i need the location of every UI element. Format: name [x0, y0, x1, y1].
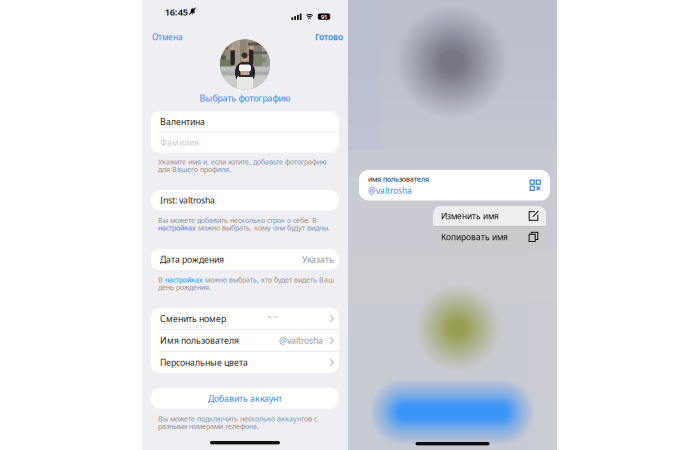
- staticText: Имя пользователя: [160, 335, 239, 346]
- button[interactable]: Дата рождения: [151, 249, 339, 270]
- staticText: @valtrosha: [279, 335, 323, 346]
- staticText: @valtrosha: [368, 185, 412, 196]
- button[interactable]: Копировать имя: [433, 227, 546, 247]
- staticText: Указать: [302, 254, 334, 265]
- staticText: имя пользователя: [368, 174, 429, 184]
- button[interactable]: Готово: [278, 30, 348, 44]
- button[interactable]: Добавить аккаунт: [151, 388, 339, 409]
- button[interactable]: Персональные цвета: [151, 352, 339, 373]
- staticText: Изменить имя: [441, 210, 499, 222]
- staticText: Дата рождения: [160, 254, 224, 265]
- staticText: Фамилия: [160, 137, 199, 148]
- staticText: Отмена: [152, 31, 183, 43]
- button[interactable]: Имя пользователя: [151, 330, 339, 351]
- staticText: 91: [321, 13, 327, 20]
- staticText: Валентина: [160, 116, 205, 127]
- staticText: для Вашего профиля.: [158, 164, 231, 174]
- staticText: Inst: valtrosha: [160, 194, 215, 206]
- staticText: день рождения.: [158, 282, 211, 292]
- button[interactable]: Изменить имя: [433, 206, 546, 226]
- staticText: Добавить аккаунт: [208, 392, 282, 404]
- staticText: Копировать имя: [441, 231, 508, 242]
- staticText: настройках: [165, 275, 203, 284]
- button[interactable]: Выбрать фотографию: [142, 92, 348, 104]
- button[interactable]: Отмена: [142, 30, 212, 44]
- staticText: Выбрать фотографию: [199, 92, 290, 104]
- button[interactable]: Profile photo: [220, 39, 270, 89]
- staticText: Укажите имя и, если хотите, добавьте фот…: [158, 157, 327, 166]
- staticText: Готово: [315, 31, 343, 43]
- button[interactable]: Сменить номер: [151, 308, 339, 329]
- staticText: 16:45: [165, 6, 188, 18]
- staticText: Персональные цвета: [160, 357, 248, 368]
- button[interactable]: Show QR code: [528, 178, 542, 192]
- staticText: Сменить номер: [160, 313, 226, 324]
- staticText: разными номерами телефона.: [158, 421, 259, 431]
- staticText: настройках: [158, 223, 196, 232]
- staticText: В: [158, 275, 165, 284]
- staticText: можно выбрать, кому они будут видны.: [196, 223, 330, 232]
- staticText: Вы можете добавить несколько строк о себ…: [158, 215, 317, 225]
- staticText: можно выбрать, кто будет видеть Ваш: [203, 275, 334, 284]
- staticText: Вы можете подключить несколько аккаунтов…: [158, 414, 317, 423]
